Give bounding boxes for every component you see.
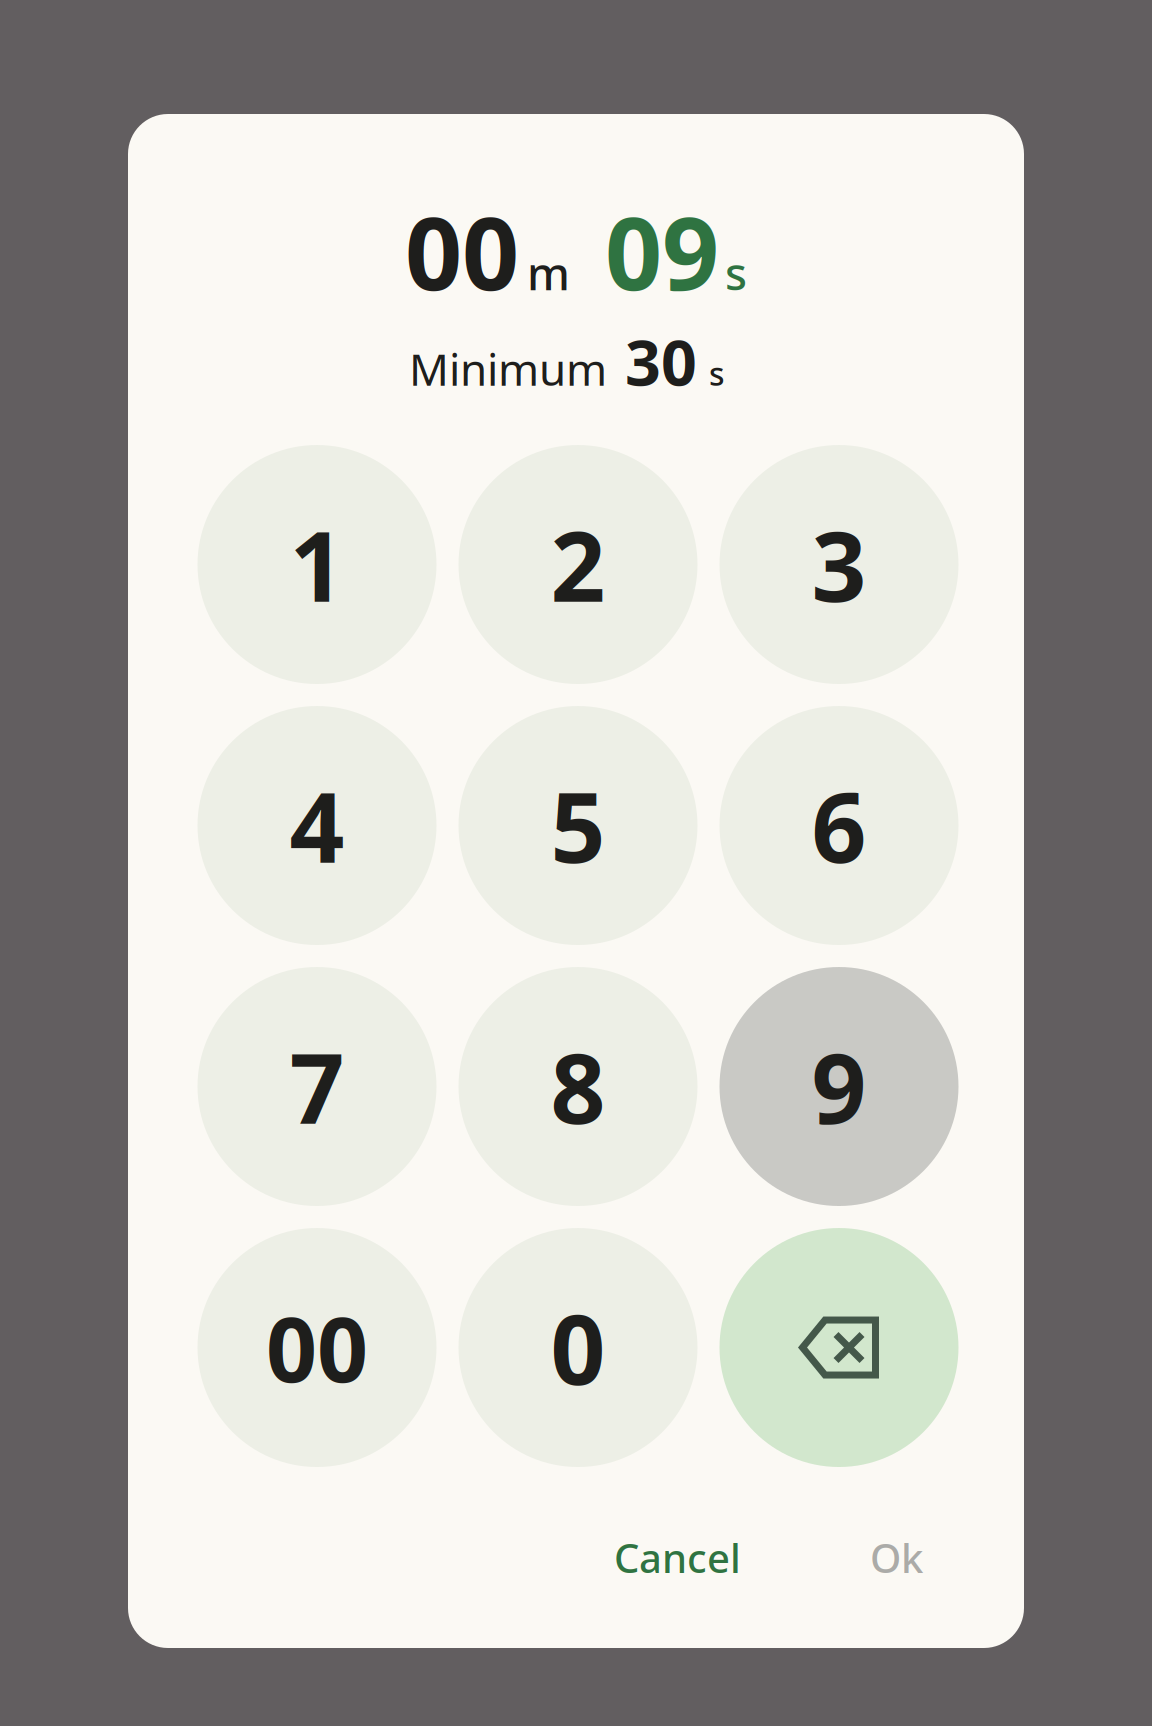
button[interactable]: Delete — [719, 1228, 958, 1467]
staticText: 9 — [811, 1023, 866, 1150]
staticText: Ok — [870, 1531, 923, 1584]
staticText: 2 — [550, 501, 605, 628]
staticText: m — [527, 242, 570, 303]
button[interactable]: 9 — [719, 967, 958, 1206]
button[interactable]: 0 — [458, 1228, 697, 1467]
staticText: s — [725, 242, 747, 303]
staticText: 7 — [289, 1023, 344, 1150]
button[interactable]: 00 — [197, 1228, 436, 1467]
staticText: s — [709, 352, 725, 395]
staticText: Minimum — [409, 339, 607, 398]
button[interactable]: 3 — [719, 445, 958, 684]
button[interactable]: 6 — [719, 706, 958, 945]
button[interactable]: 5 — [458, 706, 697, 945]
staticText: 09 — [605, 185, 719, 318]
staticText: 30 — [625, 320, 697, 403]
staticText: 6 — [811, 762, 866, 889]
button[interactable]: Cancel — [590, 1517, 765, 1598]
button[interactable]: 8 — [458, 967, 697, 1206]
staticText: Cancel — [614, 1531, 741, 1584]
staticText: 1 — [289, 501, 344, 628]
staticText: 00 — [405, 185, 519, 318]
staticText: 00 — [266, 1288, 368, 1407]
staticText: 4 — [289, 762, 344, 889]
button[interactable]: 4 — [197, 706, 436, 945]
button[interactable]: Ok — [846, 1517, 947, 1598]
button[interactable]: 1 — [197, 445, 436, 684]
staticText: 0 — [550, 1284, 605, 1411]
staticText: 5 — [550, 762, 605, 889]
button[interactable]: 2 — [458, 445, 697, 684]
staticText: 3 — [811, 501, 866, 628]
staticText: 8 — [550, 1023, 605, 1150]
button[interactable]: 7 — [197, 967, 436, 1206]
